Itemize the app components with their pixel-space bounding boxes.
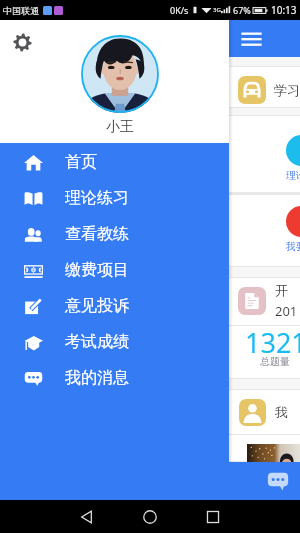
button[interactable]: 考试成绩 (0, 324, 229, 360)
button[interactable]: Open navigation menu (240, 27, 263, 50)
staticText: 理论练习 (65, 188, 129, 208)
button[interactable]: 开始练习 (0, 278, 300, 324)
staticText: 1321 (245, 324, 300, 361)
staticText: 理论练习 (286, 169, 300, 182)
staticText: 学习进度 (274, 82, 300, 98)
button[interactable]: 我的教练 (0, 390, 300, 434)
staticText: 67% (233, 4, 251, 16)
button[interactable]: 我的消息 (0, 360, 229, 396)
staticText: 小王 (106, 118, 134, 136)
button[interactable]: 我要学车 (281, 201, 300, 253)
button[interactable]: 查看教练 (0, 216, 229, 252)
staticText: 10:13 (271, 3, 297, 17)
staticText: 我的教练 (275, 404, 300, 420)
button[interactable]: Recent apps (201, 505, 225, 529)
button[interactable]: Messages (267, 469, 289, 493)
staticText: 查看教练 (65, 224, 129, 244)
button[interactable]: Back (75, 505, 99, 529)
staticText: 我的消息 (65, 368, 129, 388)
staticText: 中国联通 (3, 5, 39, 16)
button[interactable]: 理论练习 (281, 130, 300, 182)
staticText: 开始练习 (275, 282, 300, 298)
staticText: 0K/s (170, 4, 189, 16)
button[interactable]: 首页 (0, 144, 229, 180)
button[interactable]: 缴费项目 (0, 252, 229, 288)
button[interactable]: Home (138, 505, 162, 529)
staticText: 2017年 (275, 302, 300, 320)
staticText: 首页 (65, 152, 97, 172)
button[interactable]: Settings (13, 33, 32, 52)
staticText: 缴费项目 (65, 260, 129, 280)
button[interactable]: 理论练习 (0, 180, 229, 216)
staticText: 意见投诉 (65, 296, 129, 316)
staticText: 3G (213, 6, 221, 14)
button[interactable]: 意见投诉 (0, 288, 229, 324)
button[interactable]: 学习进度 (0, 70, 300, 110)
staticText: 考试成绩 (65, 332, 129, 352)
staticText: 我要学车 (286, 240, 300, 253)
staticText: 总题量 (260, 355, 290, 368)
